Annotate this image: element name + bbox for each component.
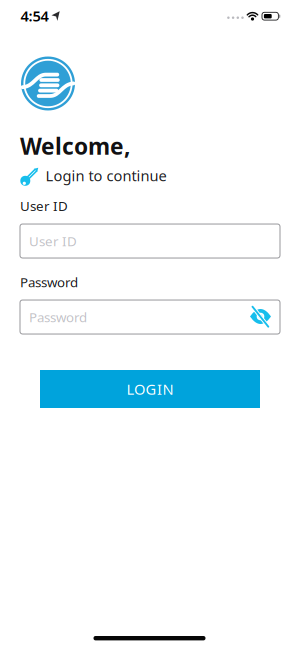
button[interactable]: User ID: [20, 224, 280, 258]
staticText: Login to continue: [46, 166, 167, 185]
button[interactable]: Show password: [245, 301, 275, 331]
button[interactable]: Password: [20, 300, 280, 334]
staticText: Welcome,: [20, 131, 130, 161]
staticText: User ID: [29, 232, 77, 250]
staticText: LOGIN: [126, 379, 173, 399]
staticText: Password: [29, 308, 87, 326]
button[interactable]: LOGIN: [40, 370, 260, 408]
staticText: User ID: [20, 197, 68, 215]
staticText: 4:54: [20, 6, 48, 26]
staticText: Password: [20, 273, 78, 291]
